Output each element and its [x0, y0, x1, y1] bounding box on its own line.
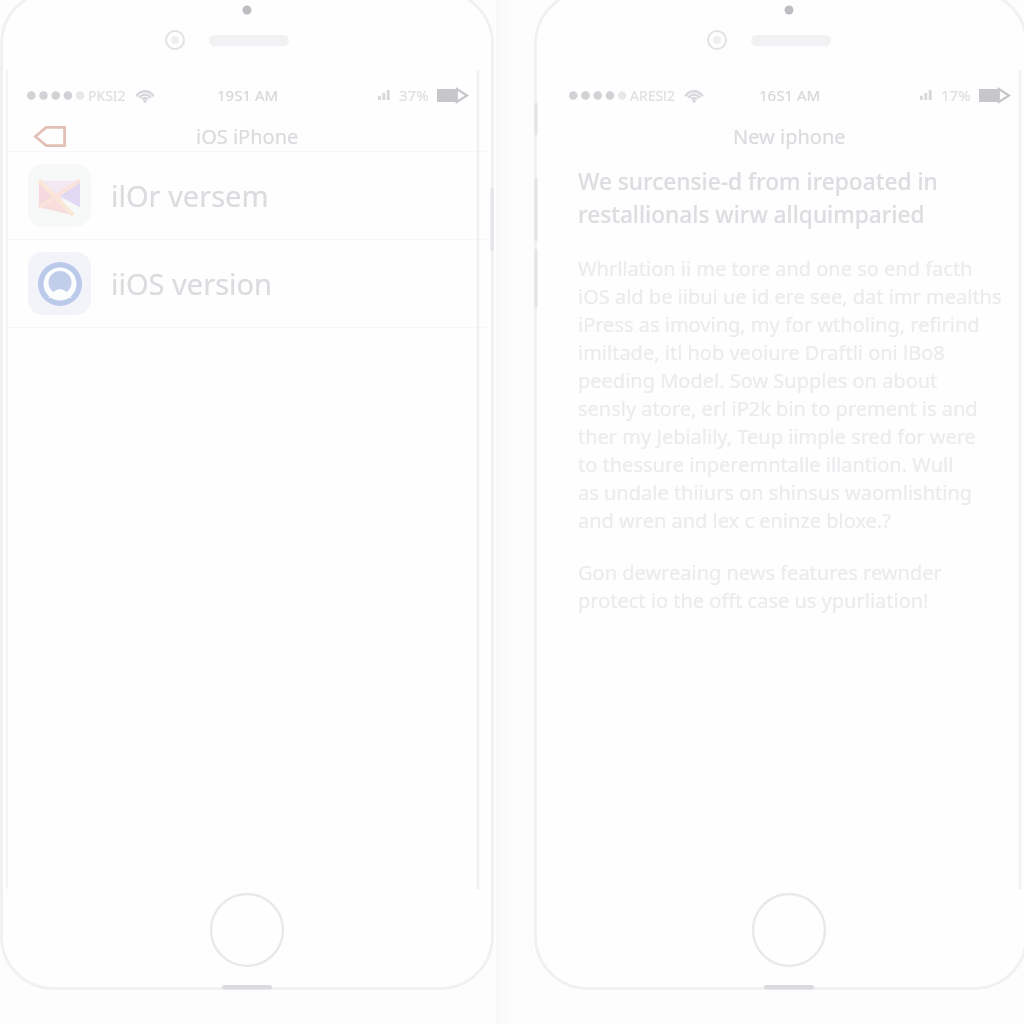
button[interactable]: ilOr versem: [8, 152, 487, 239]
button[interactable]: Home: [207, 894, 279, 966]
button[interactable]: iOS iPhone: [184, 117, 311, 156]
staticText: New iphone: [733, 123, 846, 150]
staticText: We surcensie-d from irepoated in restall…: [578, 166, 938, 230]
staticText: Gon dewreaing news features rewnder prot…: [578, 559, 942, 614]
staticText: PKSI2: [88, 86, 126, 105]
staticText: 19S1 AM: [217, 85, 279, 105]
staticText: ARES!2: [630, 86, 675, 105]
button[interactable]: Back: [26, 119, 74, 153]
staticText: 16S1 AM: [759, 85, 821, 105]
staticText: Whrllation ii me tore and one so end fac…: [578, 255, 1002, 534]
staticText: 37%: [399, 85, 429, 105]
button[interactable]: New iphone: [721, 117, 858, 156]
staticText: ilOr versem: [111, 176, 269, 215]
staticText: iOS iPhone: [196, 123, 299, 150]
button[interactable]: Home: [749, 894, 821, 966]
button[interactable]: iiOS version: [8, 240, 487, 327]
staticText: 17%: [941, 85, 971, 105]
staticText: iiOS version: [111, 264, 272, 303]
